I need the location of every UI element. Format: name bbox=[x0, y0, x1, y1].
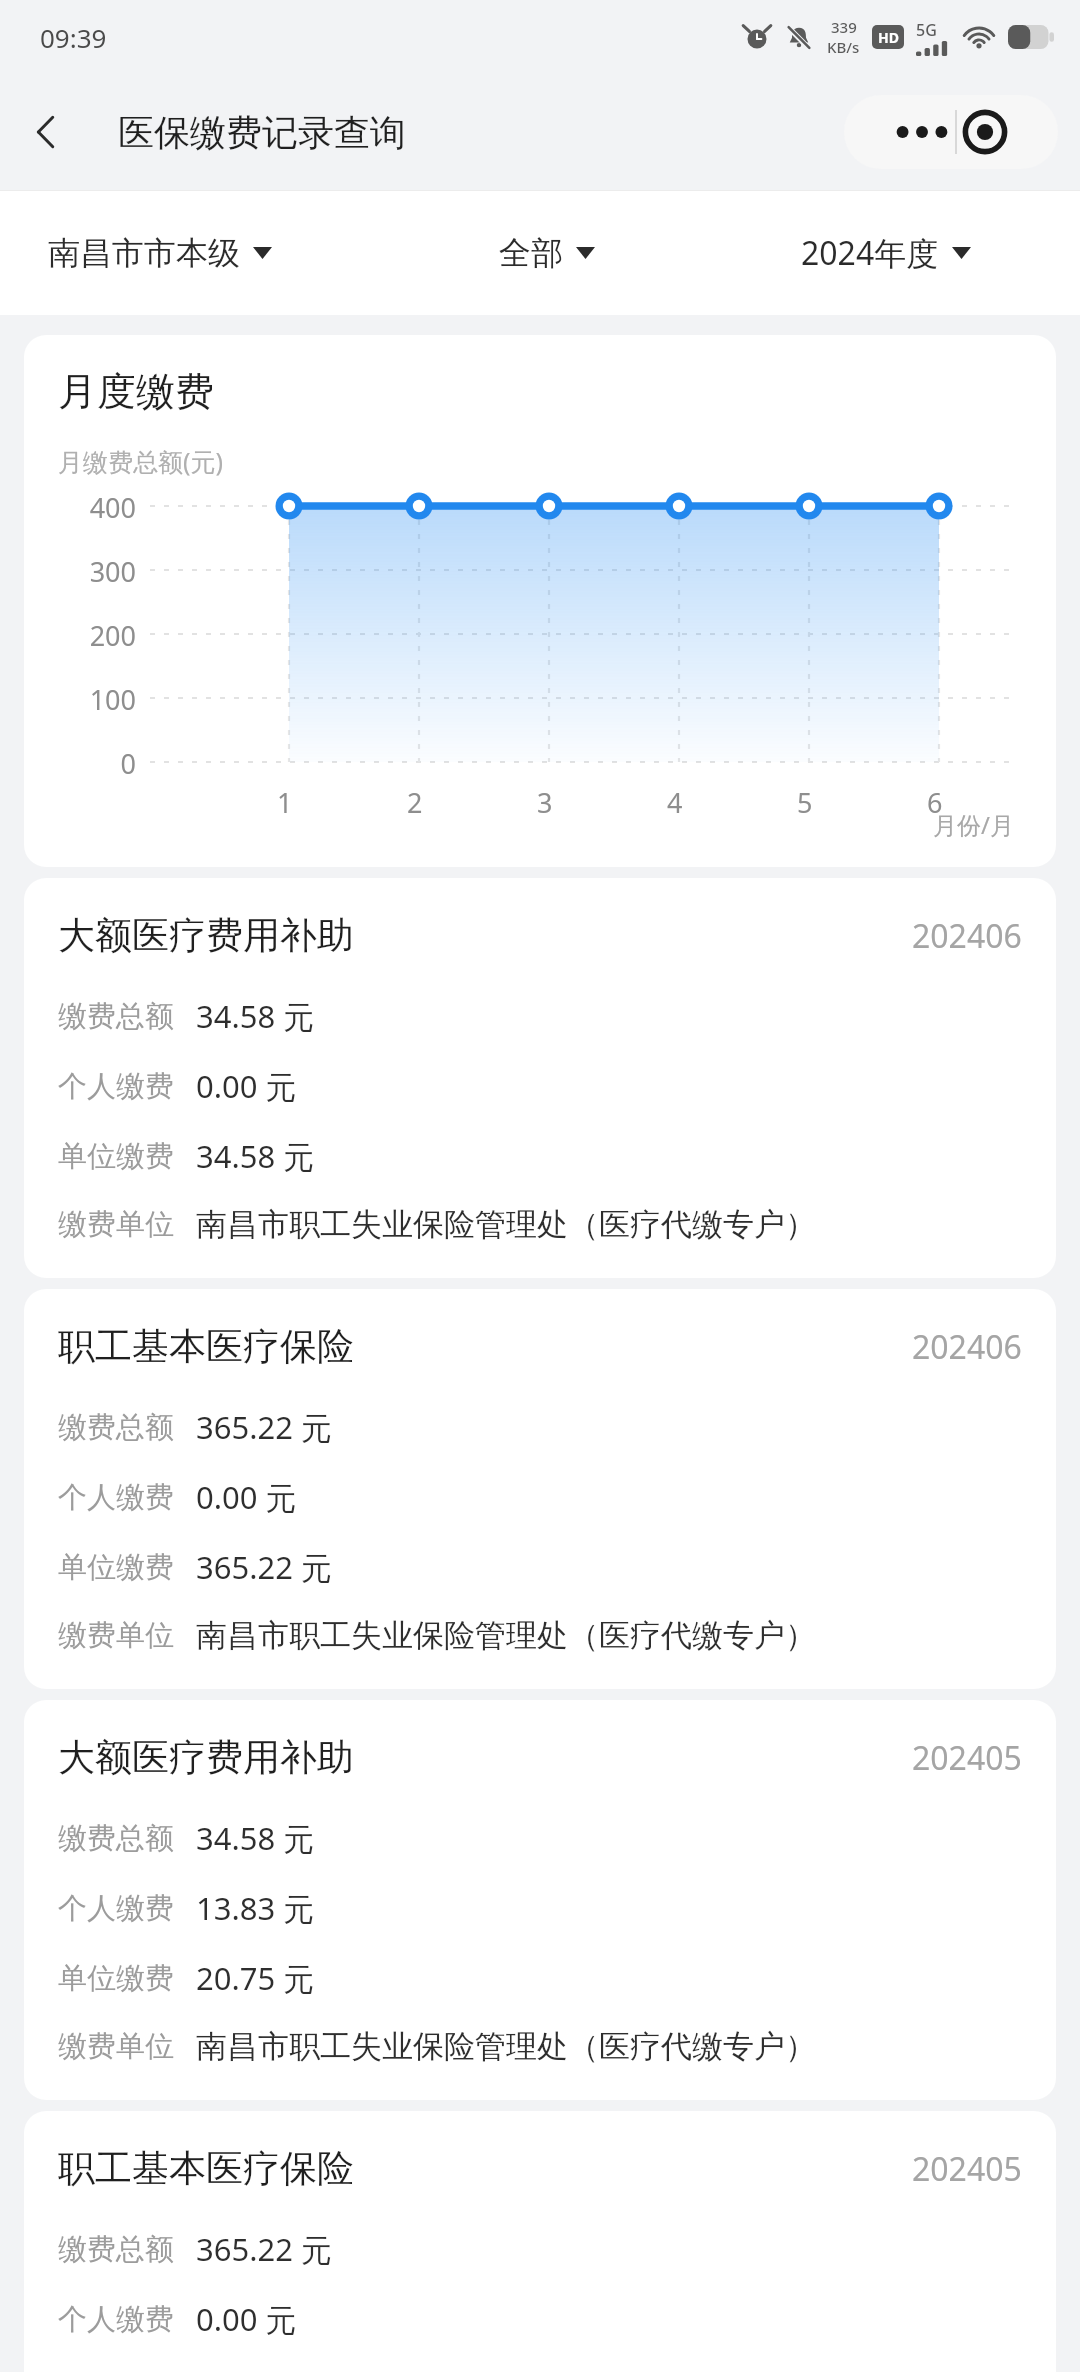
staticText: 365.22 元 bbox=[196, 2228, 333, 2270]
staticText: 个人缴费 bbox=[58, 1068, 174, 1105]
staticText: 0.00 元 bbox=[196, 2298, 297, 2340]
staticText: 34.58 元 bbox=[196, 995, 315, 1037]
staticText: 202405 bbox=[912, 1736, 1022, 1780]
staticText: 缴费总额 bbox=[58, 1820, 174, 1857]
staticText: 单位缴费 bbox=[58, 1549, 174, 1586]
staticText: 职工基本医疗保险 bbox=[58, 2145, 354, 2192]
staticText: 339 bbox=[831, 17, 857, 37]
staticText: 南昌市职工失业保险管理处（医疗代缴专户） bbox=[196, 1616, 816, 1655]
staticText: 365.22 元 bbox=[196, 1406, 333, 1448]
staticText: 月度缴费 bbox=[58, 367, 214, 416]
staticText: 个人缴费 bbox=[58, 2301, 174, 2338]
staticText: 1 bbox=[277, 784, 293, 821]
staticText: 202406 bbox=[912, 914, 1022, 958]
staticText: 南昌市市本级 bbox=[48, 233, 240, 273]
staticText: 3 bbox=[537, 784, 553, 821]
staticText: 个人缴费 bbox=[58, 1479, 174, 1516]
staticText: 0.00 元 bbox=[196, 1476, 297, 1518]
staticText: 缴费总额 bbox=[58, 2231, 174, 2268]
staticText: 34.58 元 bbox=[196, 1135, 315, 1177]
staticText: KB/s bbox=[827, 37, 860, 57]
staticText: 职工基本医疗保险 bbox=[58, 1323, 354, 1370]
button[interactable]: 返回 bbox=[14, 99, 80, 165]
staticText: 09:39 bbox=[40, 20, 107, 55]
staticText: 单位缴费 bbox=[58, 1138, 174, 1175]
staticText: 365.22 元 bbox=[196, 1546, 333, 1588]
button[interactable]: 全部 bbox=[403, 191, 691, 315]
staticText: 400 bbox=[24, 489, 136, 526]
staticText: 5 bbox=[797, 784, 813, 821]
staticText: 200 bbox=[24, 617, 136, 654]
staticText: 202405 bbox=[912, 2147, 1022, 2191]
staticText: 0.00 元 bbox=[196, 1065, 297, 1107]
staticText: 0 bbox=[24, 745, 136, 782]
staticText: 2 bbox=[407, 784, 423, 821]
staticText: 大额医疗费用补助 bbox=[58, 912, 354, 959]
button[interactable]: 南昌市市本级 bbox=[0, 191, 403, 315]
staticText: 100 bbox=[24, 681, 136, 718]
staticText: 34.58 元 bbox=[196, 1817, 315, 1859]
button[interactable]: 大额医疗费用补助 bbox=[24, 1700, 1056, 2100]
staticText: 4 bbox=[667, 784, 683, 821]
button[interactable]: 大额医疗费用补助 bbox=[24, 878, 1056, 1278]
staticText: 大额医疗费用补助 bbox=[58, 1734, 354, 1781]
button[interactable]: 更多菜单 bbox=[844, 95, 1058, 169]
staticText: 缴费总额 bbox=[58, 1409, 174, 1446]
staticText: 月缴费总额(元) bbox=[58, 444, 224, 478]
button[interactable]: 职工基本医疗保险 bbox=[24, 2111, 1056, 2372]
staticText: 缴费总额 bbox=[58, 998, 174, 1035]
staticText: 300 bbox=[24, 553, 136, 590]
staticText: 202406 bbox=[912, 1325, 1022, 1369]
staticText: 缴费单位 bbox=[58, 2028, 174, 2065]
staticText: 医保缴费记录查询 bbox=[118, 110, 406, 155]
staticText: 南昌市职工失业保险管理处（医疗代缴专户） bbox=[196, 2027, 816, 2066]
staticText: 缴费单位 bbox=[58, 1617, 174, 1654]
staticText: 13.83 元 bbox=[196, 1887, 315, 1929]
staticText: 20.75 元 bbox=[196, 1957, 315, 1999]
staticText: 南昌市职工失业保险管理处（医疗代缴专户） bbox=[196, 1205, 816, 1244]
staticText: 个人缴费 bbox=[58, 1890, 174, 1927]
staticText: 缴费单位 bbox=[58, 1206, 174, 1243]
staticText: 5G bbox=[916, 19, 937, 41]
button[interactable]: 2024年度 bbox=[691, 191, 1080, 315]
staticText: 全部 bbox=[499, 233, 563, 273]
staticText: HD bbox=[878, 28, 899, 47]
staticText: 2024年度 bbox=[801, 231, 939, 275]
staticText: 月份/月 bbox=[933, 808, 1014, 841]
staticText: 单位缴费 bbox=[58, 1960, 174, 1997]
button[interactable]: 职工基本医疗保险 bbox=[24, 1289, 1056, 1689]
staticText: 6 bbox=[927, 784, 943, 821]
